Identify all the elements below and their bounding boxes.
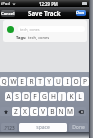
button[interactable]: P: [81, 77, 89, 86]
button[interactable]: tech, cones: [18, 26, 85, 32]
staticText: P: [83, 77, 87, 86]
button[interactable]: G: [40, 92, 48, 101]
staticText: C: [32, 107, 37, 116]
button[interactable]: A: [5, 92, 12, 101]
staticText: tech, cones: [28, 35, 50, 40]
staticText: Y: [47, 77, 51, 86]
staticText: iPad: [1, 1, 11, 7]
button[interactable]: Q: [0, 77, 8, 86]
button[interactable]: space: [19, 123, 67, 132]
button[interactable]: I: [63, 77, 71, 86]
staticText: N: [58, 107, 64, 116]
staticText: B: [50, 107, 55, 116]
button[interactable]: H: [49, 92, 57, 101]
staticText: H: [51, 92, 56, 101]
button[interactable]: Cancel: [1, 10, 15, 17]
button[interactable]: .?123: [1, 123, 17, 132]
button[interactable]: Y: [45, 77, 53, 86]
button[interactable]: Z: [12, 107, 20, 116]
staticText: .?123: [3, 125, 15, 131]
button[interactable]: X: [21, 107, 29, 116]
staticText: V: [41, 107, 45, 116]
staticText: F: [33, 92, 37, 101]
staticText: Done: [72, 124, 85, 131]
staticText: J: [61, 92, 63, 101]
staticText: space: [36, 124, 50, 131]
button[interactable]: N: [57, 107, 65, 116]
button[interactable]: R: [27, 77, 35, 86]
button[interactable]: F: [31, 92, 39, 101]
staticText: I: [66, 77, 69, 86]
button[interactable]: V: [39, 107, 47, 116]
button[interactable]: E: [18, 77, 26, 86]
staticText: S: [15, 92, 19, 101]
button[interactable]: K: [67, 92, 75, 101]
button[interactable]: C: [30, 107, 38, 116]
staticText: Cancel: [1, 11, 15, 17]
staticText: Done: [76, 10, 86, 16]
button[interactable]: L: [76, 92, 84, 101]
button[interactable]: D: [22, 92, 30, 101]
staticText: G: [42, 92, 47, 101]
staticText: A: [6, 92, 11, 101]
staticText: 12:29 PM: [39, 1, 58, 7]
staticText: X: [23, 107, 27, 116]
button[interactable]: Shift: [0, 107, 11, 116]
button[interactable]: M: [66, 107, 74, 116]
staticText: tech, cones: [20, 27, 40, 32]
staticText: Z: [14, 107, 18, 116]
staticText: O: [73, 77, 79, 86]
button[interactable]: O: [72, 77, 80, 86]
staticText: R: [29, 77, 34, 86]
button[interactable]: Backspace: [75, 107, 86, 116]
button[interactable]: U: [54, 77, 62, 86]
staticText: Tags:: [16, 35, 27, 40]
staticText: L: [78, 92, 82, 101]
button[interactable]: Done: [76, 10, 86, 16]
staticText: W: [10, 77, 17, 86]
button[interactable]: B: [48, 107, 56, 116]
button[interactable]: T: [36, 77, 44, 86]
staticText: D: [24, 92, 29, 101]
staticText: Save Track: [28, 9, 61, 17]
staticText: T: [38, 77, 42, 86]
button[interactable]: J: [58, 92, 66, 101]
button[interactable]: Done: [69, 123, 88, 132]
staticText: Q: [1, 77, 7, 86]
staticText: U: [56, 77, 61, 86]
button[interactable]: W: [9, 77, 17, 86]
staticText: K: [69, 92, 74, 101]
staticText: E: [20, 77, 24, 86]
staticText: M: [67, 107, 73, 116]
button[interactable]: S: [13, 92, 21, 101]
